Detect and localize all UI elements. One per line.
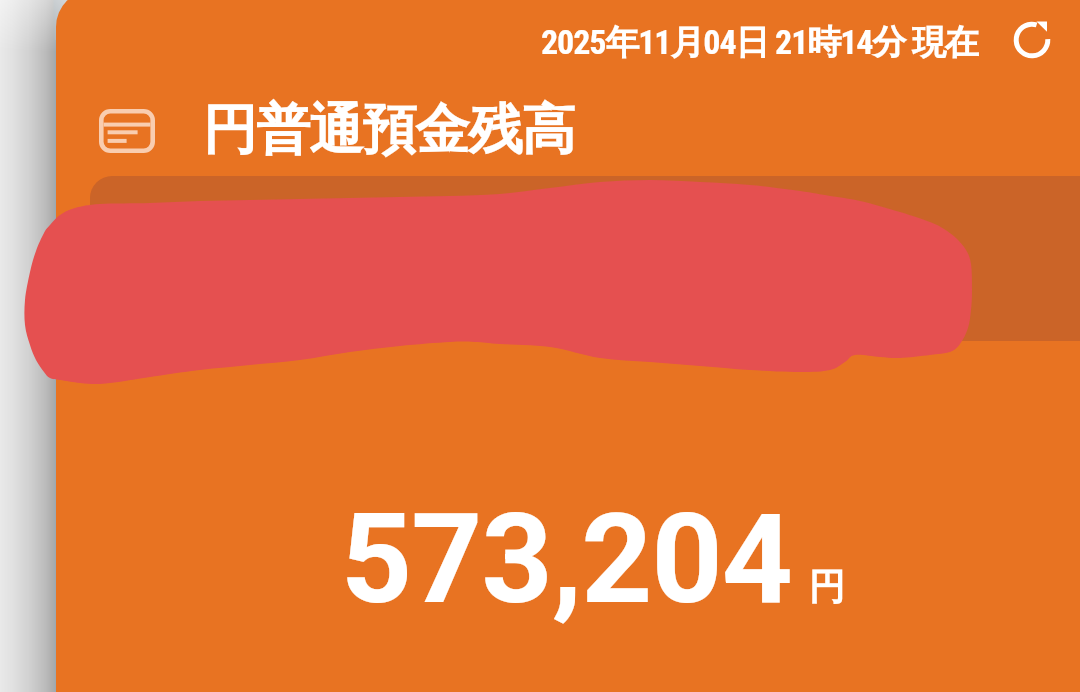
staticText: 円普通預金残高 [203, 96, 575, 164]
button[interactable]: Refresh balance [1006, 14, 1058, 66]
staticText: 円 [809, 564, 845, 609]
button[interactable]: 円普通預金残高 573,204円 [56, 0, 1080, 692]
staticText: 2025年11月04日 21時14分 現在 [541, 21, 978, 64]
staticText: 573,204 [341, 487, 793, 632]
